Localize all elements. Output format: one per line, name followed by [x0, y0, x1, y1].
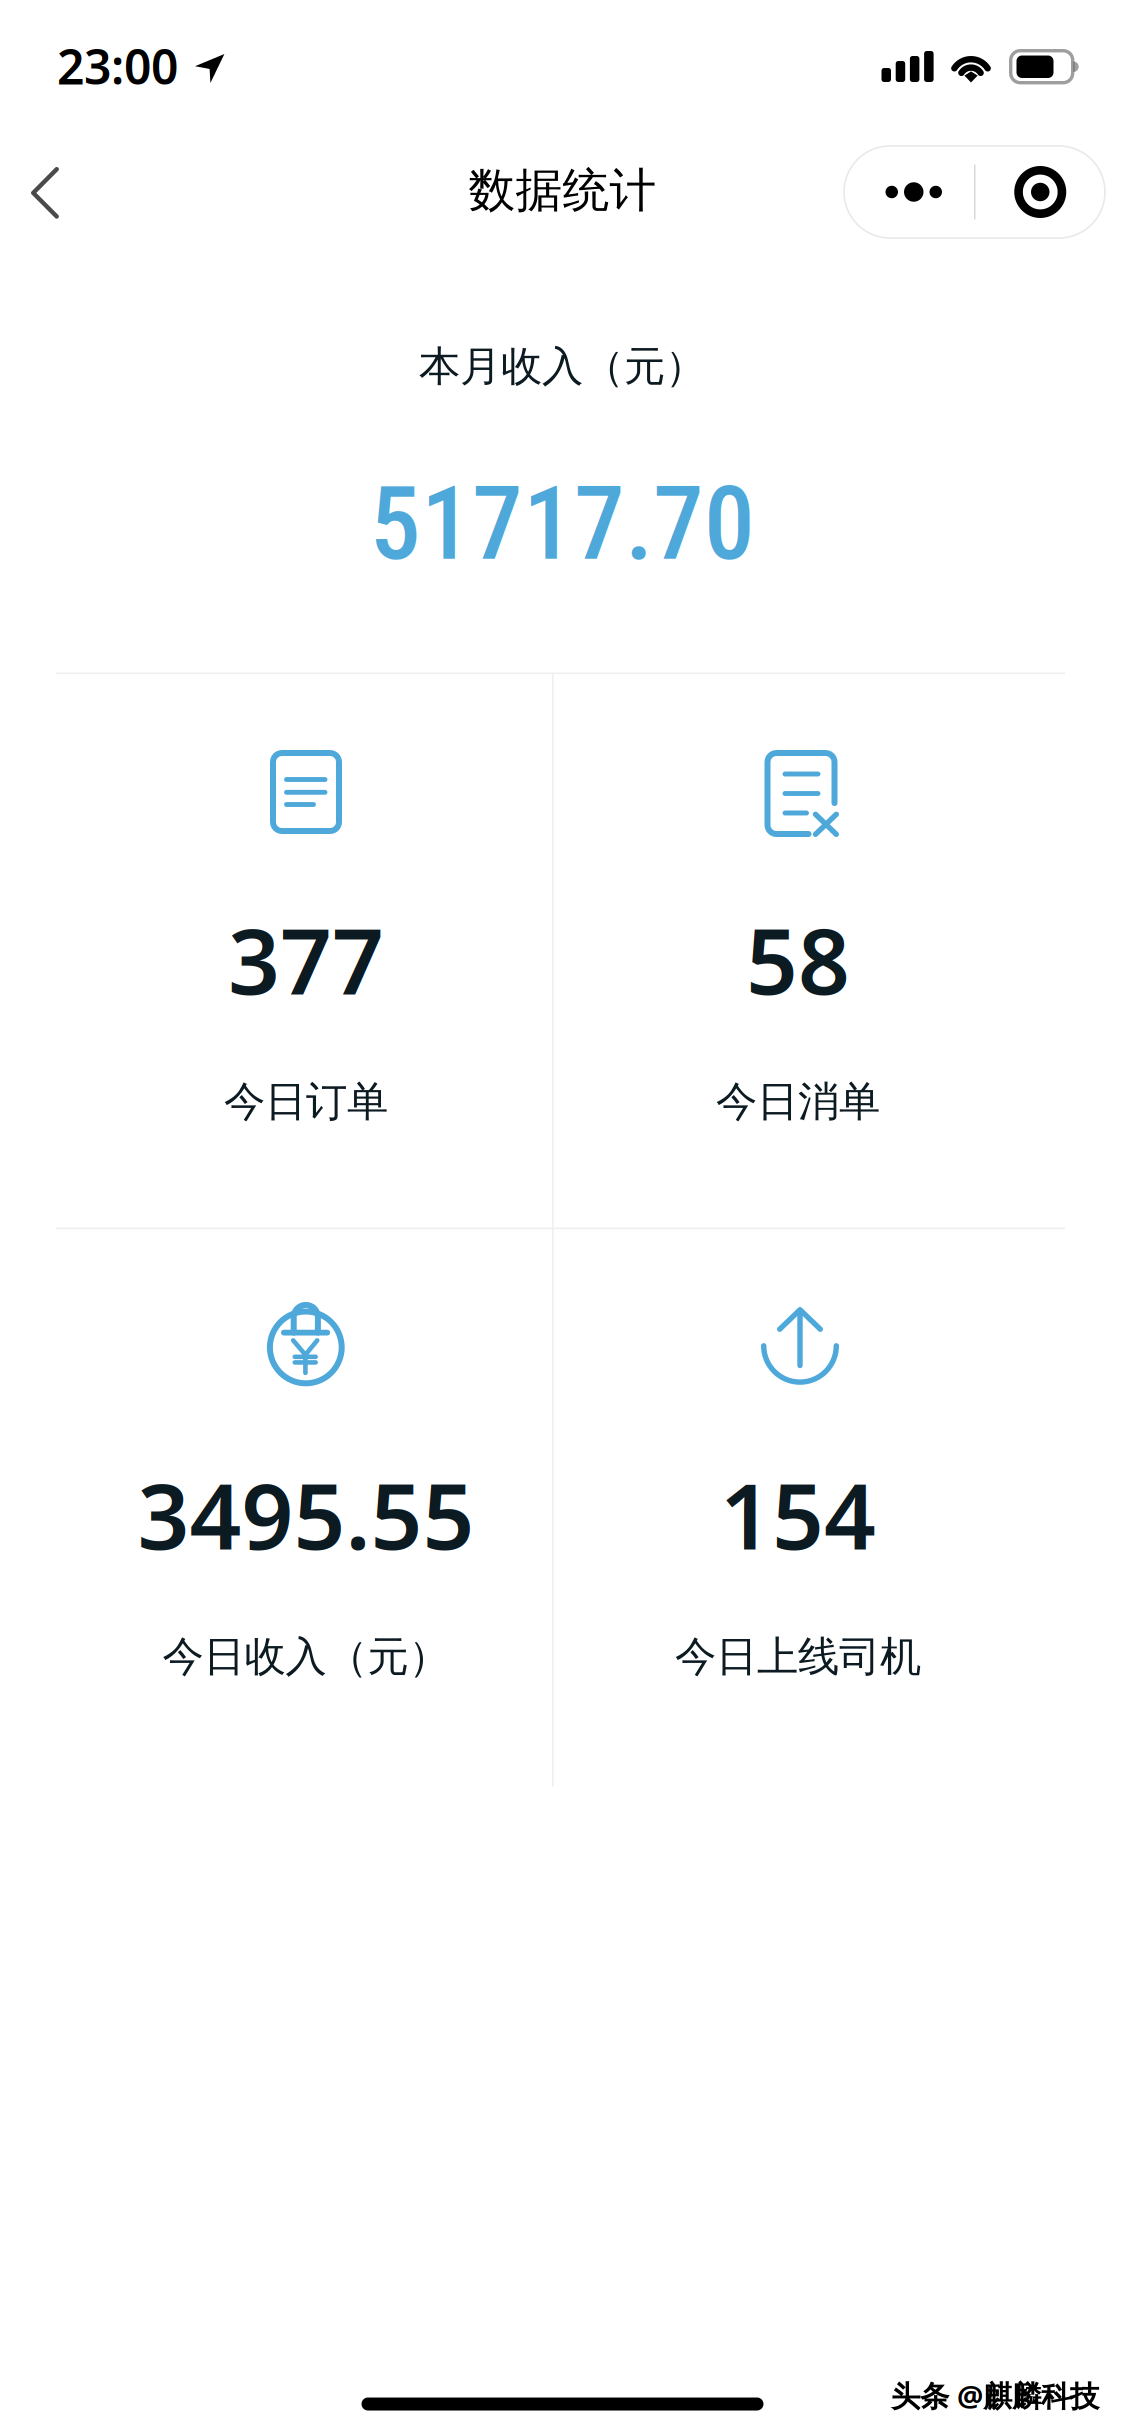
staticText: 23:00: [57, 34, 178, 98]
staticText: 今日收入（元）: [162, 1631, 449, 1682]
staticText: 154: [720, 1454, 876, 1574]
staticText: 今日订单: [224, 1076, 388, 1127]
button[interactable]: 3495.55: [60, 1227, 552, 1786]
staticText: 数据统计: [468, 162, 656, 219]
staticText: 今日上线司机: [675, 1631, 921, 1682]
button[interactable]: Close mini program: [975, 146, 1105, 238]
button[interactable]: Back: [0, 150, 99, 242]
staticText: 今日消单: [716, 1076, 880, 1127]
staticText: 头条 @麒麟科技: [891, 2376, 1099, 2415]
button[interactable]: 377: [60, 672, 552, 1227]
staticText: 3495.55: [137, 1454, 474, 1574]
button[interactable]: More options: [844, 146, 974, 238]
staticText: 本月收入（元）: [419, 341, 706, 392]
button[interactable]: 154: [552, 1227, 1044, 1786]
staticText: 377: [228, 899, 384, 1019]
staticText: 58: [746, 899, 850, 1019]
staticText: 51717.70: [370, 465, 755, 583]
button[interactable]: 58: [552, 672, 1044, 1227]
